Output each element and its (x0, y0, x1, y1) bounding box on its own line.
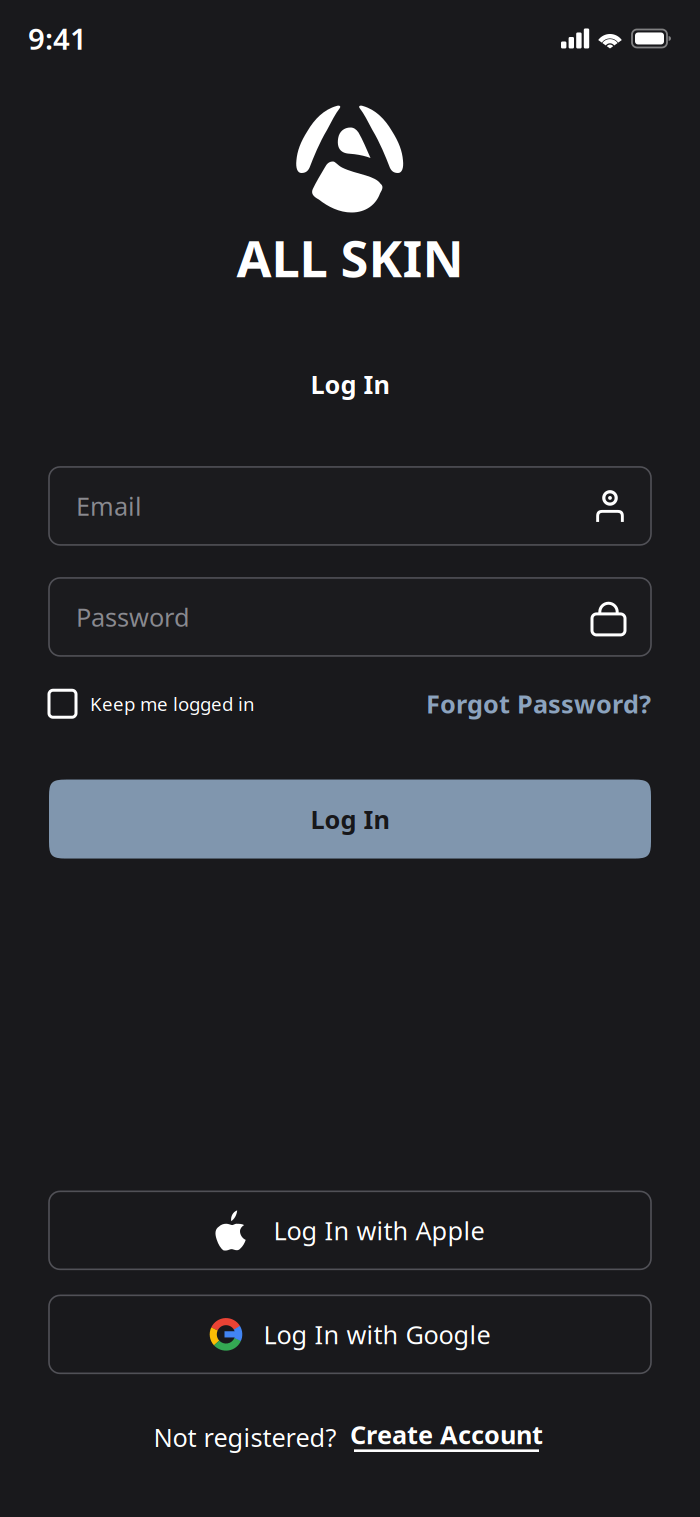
button[interactable]: Forgot Password? (426, 687, 651, 720)
staticText: Log In (310, 802, 389, 836)
staticText: Forgot Password? (426, 687, 651, 720)
staticText: Password (76, 600, 190, 634)
button[interactable]: Not registered? (153, 1420, 546, 1454)
staticText: ALL SKIN (236, 224, 463, 291)
staticText: 9:41 (28, 19, 87, 58)
button[interactable]: Log In with Apple (49, 1191, 651, 1269)
button[interactable]: Log In with Google (49, 1295, 651, 1373)
staticText: Log In with Apple (273, 1213, 484, 1247)
staticText: Email (76, 489, 142, 523)
staticText: Log In with Google (263, 1317, 490, 1351)
staticText: Keep me logged in (90, 691, 255, 716)
staticText: Create Account (350, 1418, 543, 1451)
button[interactable]: Log In (49, 780, 651, 859)
staticText: Not registered? (153, 1420, 336, 1454)
button[interactable]: Keep me logged in (49, 690, 255, 717)
staticText: Log In (310, 367, 389, 401)
